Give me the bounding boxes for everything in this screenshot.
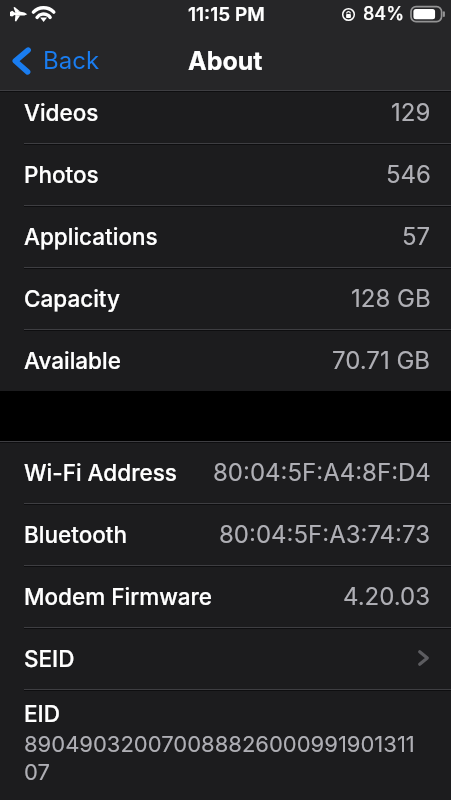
- button[interactable]: Bluetooth: [0, 505, 451, 565]
- staticText: EID: [24, 700, 60, 727]
- button[interactable]: Videos: [0, 92, 451, 143]
- staticText: SEID: [24, 645, 75, 672]
- other: Open SEID: [418, 650, 429, 666]
- staticText: 128 GB: [351, 284, 431, 313]
- other: Back: [10, 46, 31, 76]
- button[interactable]: Photos: [0, 145, 451, 205]
- staticText: 129: [391, 98, 431, 127]
- staticText: 4.20.03: [343, 582, 431, 611]
- staticText: About: [188, 46, 263, 76]
- staticText: Wi-Fi Address: [24, 459, 177, 486]
- staticText: 89049032007008882600099190131107: [24, 731, 424, 785]
- staticText: Videos: [24, 99, 99, 126]
- button[interactable]: Applications: [0, 207, 451, 267]
- staticText: Available: [24, 347, 121, 374]
- button[interactable]: Available: [0, 331, 451, 391]
- staticText: 80:04:5F:A3:74:73: [219, 520, 431, 549]
- staticText: 80:04:5F:A4:8F:D4: [213, 458, 431, 487]
- button[interactable]: EID: [0, 691, 451, 799]
- staticText: 546: [386, 160, 431, 189]
- staticText: 70.71 GB: [332, 346, 431, 375]
- button[interactable]: Back: [0, 43, 112, 79]
- staticText: 84%: [363, 3, 405, 25]
- staticText: Photos: [24, 161, 99, 188]
- staticText: 11:15 PM: [188, 3, 265, 26]
- staticText: Applications: [24, 223, 158, 250]
- staticText: 57: [402, 222, 431, 251]
- button[interactable]: Capacity: [0, 269, 451, 329]
- button[interactable]: Modem Firmware: [0, 567, 451, 627]
- button[interactable]: SEID: [0, 629, 451, 689]
- staticText: Bluetooth: [24, 521, 128, 548]
- staticText: Back: [43, 46, 100, 75]
- staticText: Modem Firmware: [24, 583, 213, 610]
- staticText: Capacity: [24, 285, 120, 312]
- button[interactable]: Wi-Fi Address: [0, 443, 451, 503]
